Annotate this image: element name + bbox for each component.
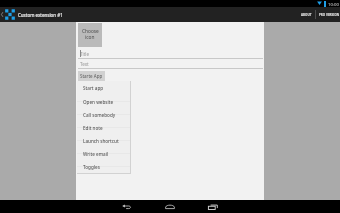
staticText: Choose (82, 28, 99, 35)
staticText: ABOUT (301, 13, 312, 17)
button[interactable]: Navigate up (0, 7, 4, 22)
staticText: Custom extension #1 (18, 12, 63, 18)
button[interactable]: Starte App (78, 71, 105, 81)
staticText: Title (80, 51, 89, 57)
button[interactable]: Open website (77, 95, 130, 108)
button[interactable]: Call somebody (77, 108, 130, 121)
button[interactable]: PRO VERSION (316, 7, 340, 22)
staticText: PRO VERSION (319, 13, 340, 17)
button[interactable]: Edit note (77, 121, 130, 134)
button[interactable]: Launch shortcut (77, 134, 130, 147)
button[interactable]: Write email (77, 147, 130, 160)
button[interactable]: ABOUT (297, 7, 315, 22)
button[interactable]: Toggles (77, 160, 130, 173)
staticText: Text (80, 61, 89, 67)
button[interactable]: Start app (77, 81, 130, 95)
staticText: Start app (83, 85, 104, 91)
button[interactable]: Back (118, 200, 135, 213)
staticText: Call somebody (83, 112, 116, 118)
button[interactable]: Choose (78, 23, 102, 47)
staticText: Write email (83, 151, 109, 157)
staticText: icon (85, 34, 95, 41)
staticText: Edit note (83, 125, 103, 131)
staticText: 10:00 (328, 1, 339, 7)
staticText: Toggles (83, 164, 100, 170)
staticText: Launch shortcut (83, 138, 119, 144)
button[interactable]: Home (161, 200, 178, 213)
staticText: Starte App (80, 73, 103, 79)
staticText: Open website (83, 99, 114, 105)
button[interactable]: Recent apps (204, 200, 221, 213)
